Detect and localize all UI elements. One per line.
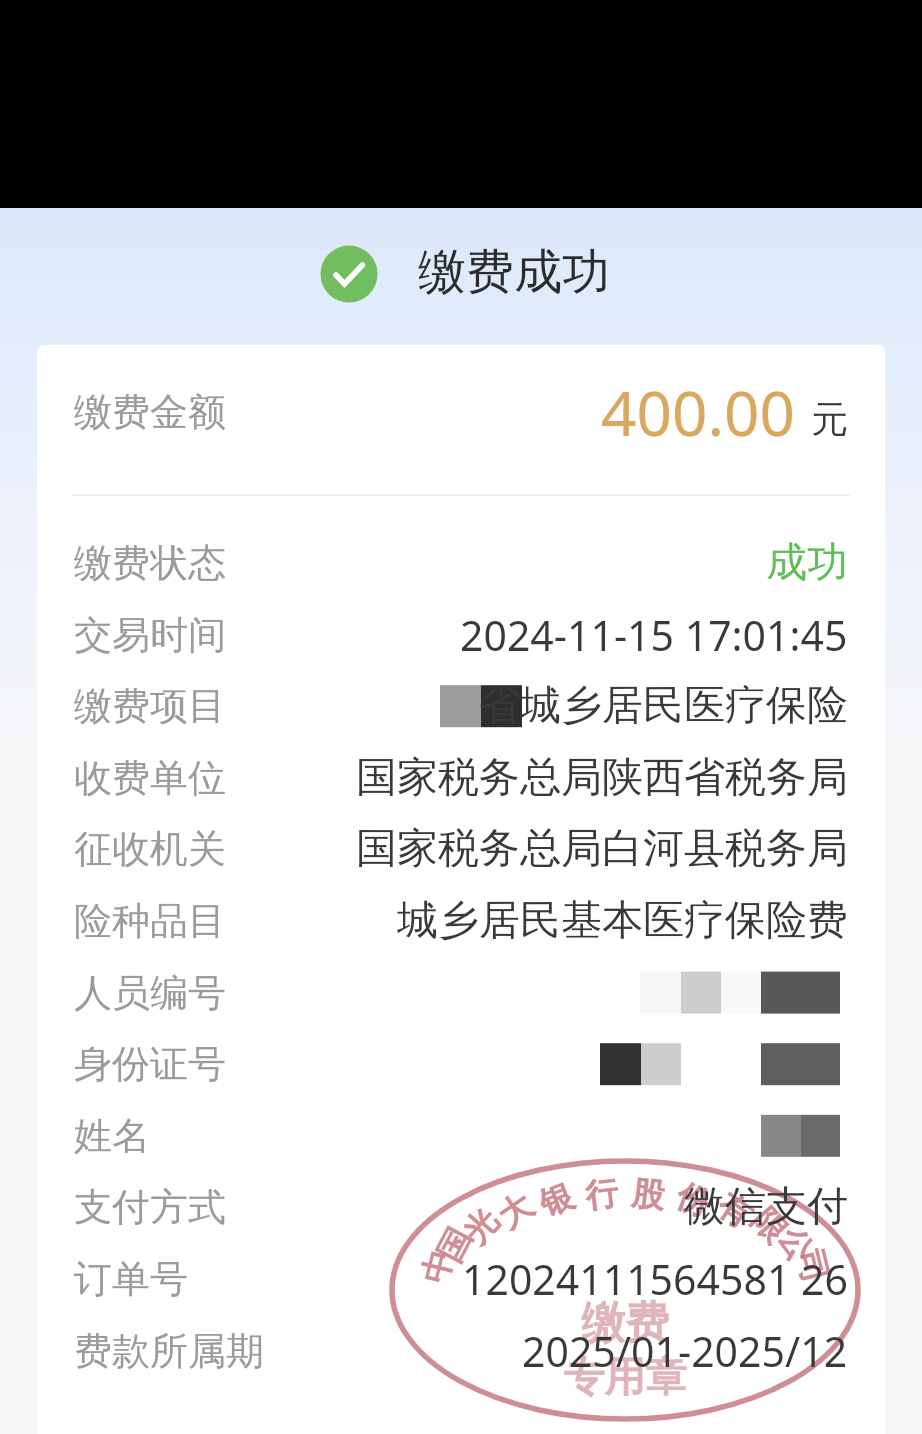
button[interactable]: 缴费成功 (310, 240, 610, 310)
